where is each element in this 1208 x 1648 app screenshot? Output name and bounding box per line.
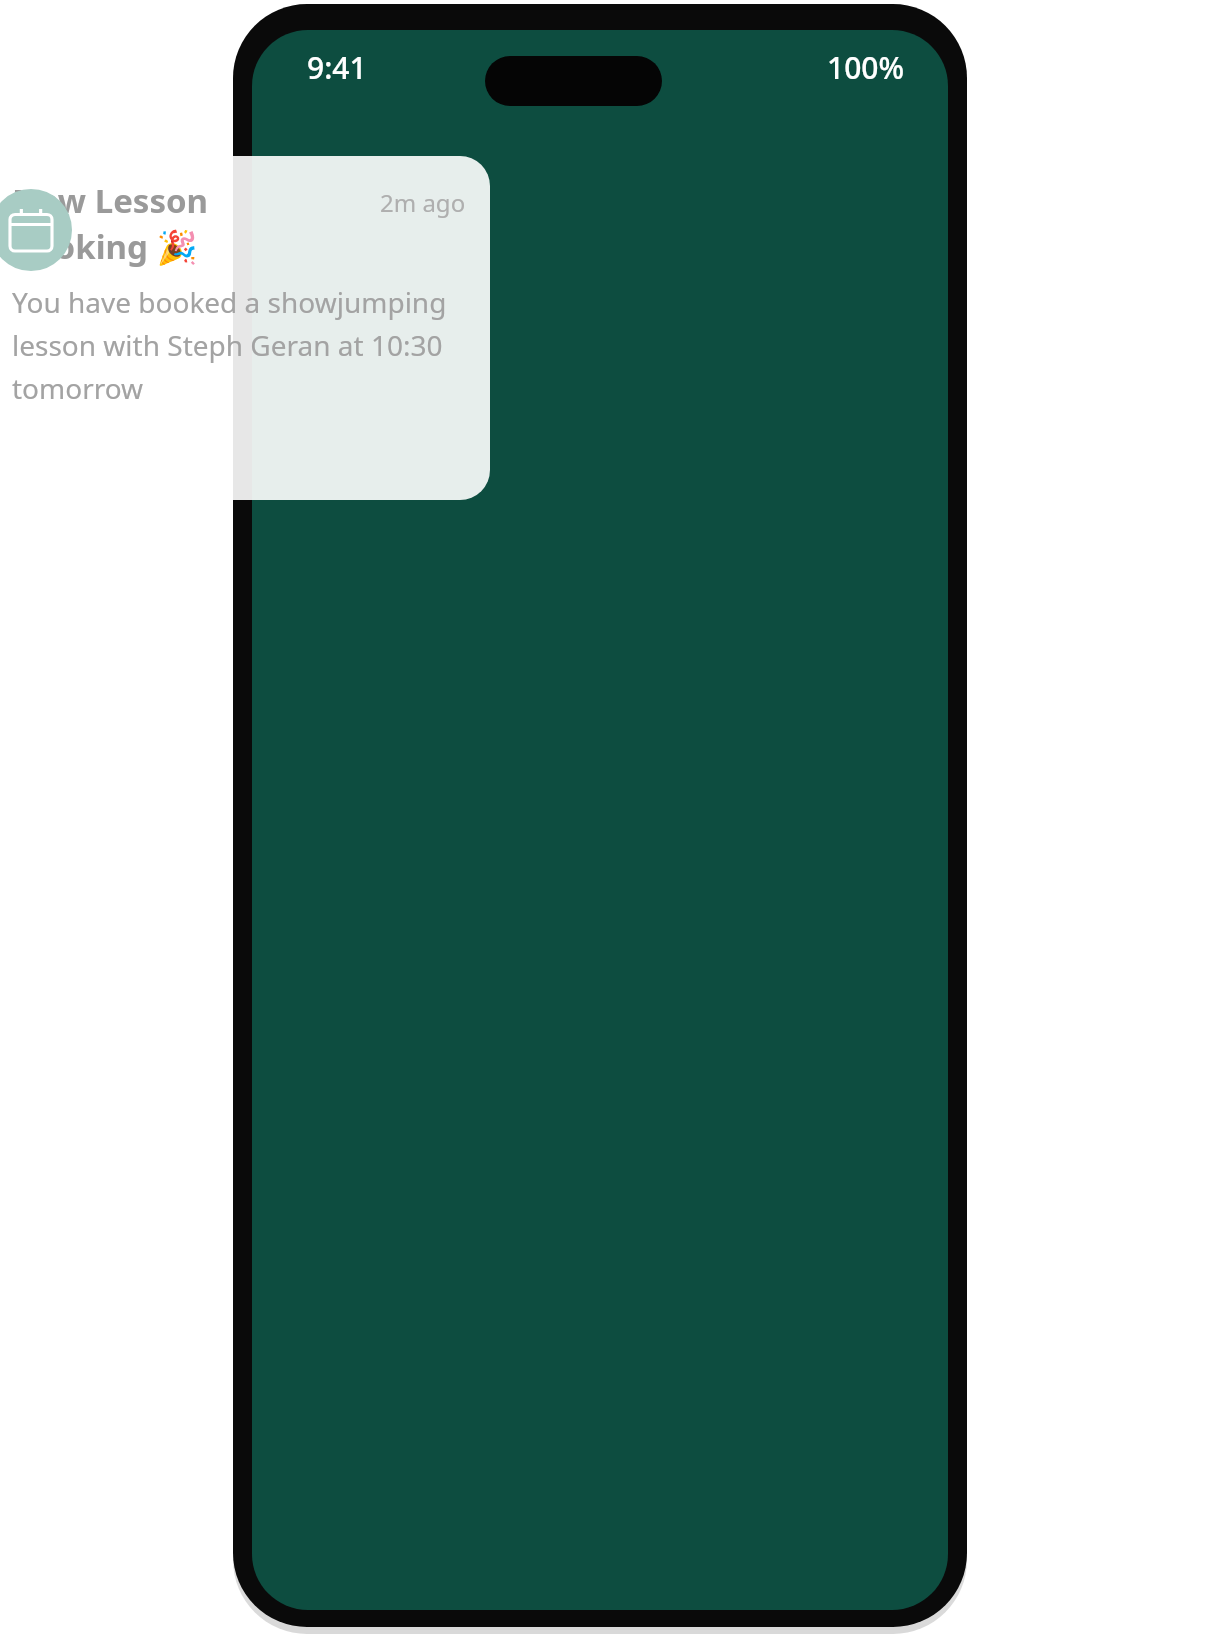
staticText: 100% xyxy=(827,47,905,88)
staticText: 2m ago xyxy=(380,186,466,219)
staticText: You have booked a showjumping lesson wit… xyxy=(12,283,466,407)
other: Calendar xyxy=(0,189,72,271)
staticText: 9:41 xyxy=(307,47,367,88)
button[interactable]: New Lesson Booking 🎉 xyxy=(0,156,490,500)
staticText: New Lesson Booking 🎉 xyxy=(12,178,372,269)
